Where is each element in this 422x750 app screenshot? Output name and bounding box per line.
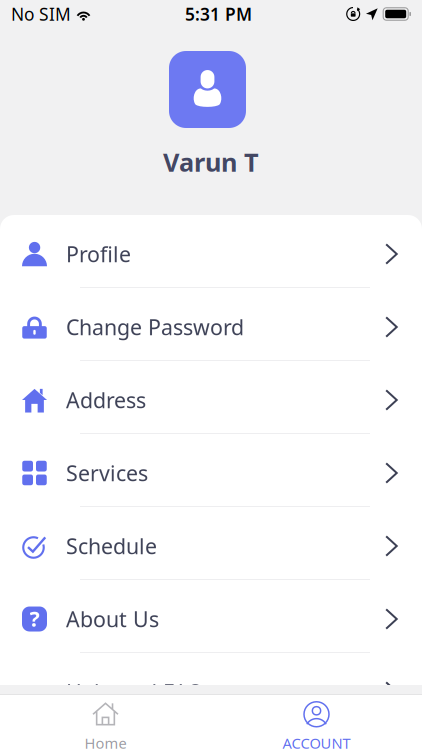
button[interactable]: Schedule	[0, 507, 422, 580]
button[interactable]: Home	[0, 694, 211, 750]
staticText: ?	[29, 604, 39, 633]
staticText: 5:31 PM	[185, 2, 252, 25]
staticText: ACCOUNT	[282, 733, 350, 750]
staticText: Address	[66, 386, 146, 414]
button[interactable]: ACCOUNT	[211, 694, 422, 750]
button[interactable]: Profile	[0, 215, 422, 288]
staticText: Change Password	[66, 313, 244, 341]
button[interactable]: Address	[0, 361, 422, 434]
staticText: Help and FAQ	[66, 678, 204, 706]
staticText: Varun T	[163, 145, 259, 179]
button[interactable]: Services	[0, 434, 422, 507]
staticText: Schedule	[66, 532, 157, 560]
button[interactable]: Help and FAQ	[0, 653, 422, 726]
staticText: Services	[66, 459, 148, 487]
staticText: No SIM	[11, 2, 71, 25]
staticText: Profile	[66, 240, 131, 268]
staticText: Home	[84, 733, 126, 750]
button[interactable]: Change Password	[0, 288, 422, 361]
staticText: About Us	[66, 605, 159, 633]
button[interactable]: ?	[0, 580, 422, 653]
